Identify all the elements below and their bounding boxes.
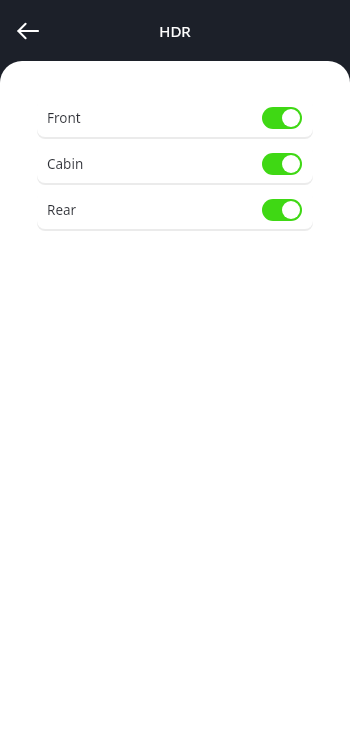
button[interactable]: Back [8,11,48,51]
button[interactable]: Front [37,98,313,137]
button[interactable]: Cabin [37,144,313,183]
staticText: Front [47,109,81,127]
button[interactable]: Rear [37,190,313,229]
staticText: HDR [159,21,191,41]
staticText: Rear [47,201,77,219]
staticText: Cabin [47,155,84,173]
